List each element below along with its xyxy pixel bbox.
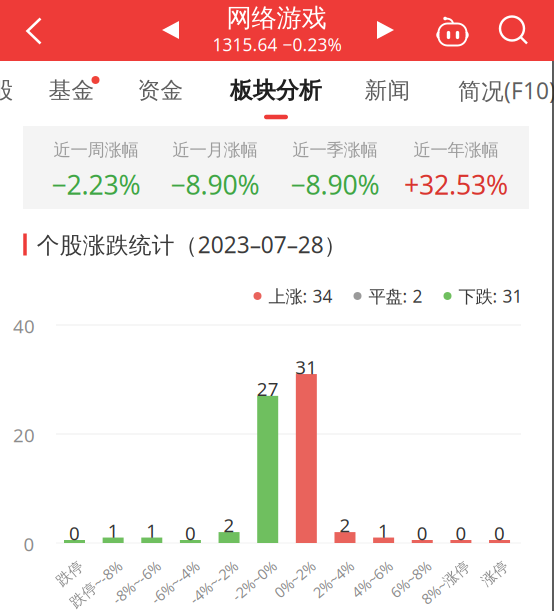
staticText: −8.90% (170, 167, 259, 202)
staticText: 2%~4% (299, 556, 347, 575)
staticText: -8%~-6% (96, 556, 154, 575)
staticText: 上涨: 34 (268, 284, 332, 307)
staticText: 下跌: 31 (458, 284, 522, 307)
button[interactable]: Back (5, 0, 63, 61)
button[interactable]: 资金 (125, 61, 195, 121)
staticText: 20 (13, 423, 35, 447)
staticText: 跌停~-8% (52, 556, 115, 575)
staticText: 网络游戏 (226, 2, 326, 33)
staticText: 基金 (48, 77, 94, 104)
staticText: 40 (13, 314, 35, 338)
staticText: 0 (69, 521, 80, 545)
staticText: 资金 (137, 77, 183, 104)
staticText: 板块分析 (230, 77, 322, 104)
button[interactable]: 板块分析 (221, 61, 331, 121)
staticText: 近一年涨幅 (413, 139, 498, 161)
staticText: +32.53% (404, 167, 508, 202)
staticText: 1 (378, 518, 389, 543)
button[interactable]: 新闻 (352, 61, 422, 121)
staticText: 0%~2% (260, 556, 308, 575)
staticText: 股 (0, 77, 13, 104)
button[interactable]: 近一年涨幅 (397, 126, 515, 209)
button[interactable]: 股 (0, 61, 26, 121)
staticText: 2 (224, 513, 235, 537)
staticText: 涨停 (471, 556, 501, 574)
button[interactable]: 近一月涨幅 (156, 126, 274, 209)
staticText: −2.23% (51, 167, 140, 202)
staticText: 0 (23, 532, 34, 556)
staticText: 跌停 (46, 556, 76, 574)
staticText: -4%~-2% (173, 556, 231, 575)
staticText: -2%~0% (217, 556, 270, 575)
staticText: 31 (295, 355, 317, 379)
staticText: 近一月涨幅 (172, 139, 257, 161)
staticText: 1 (146, 518, 157, 543)
button[interactable]: 简况(F10) (452, 61, 554, 121)
staticText: 近一季涨幅 (292, 139, 377, 161)
button[interactable]: Next sector (361, 4, 409, 56)
button[interactable]: 基金 (36, 61, 106, 121)
staticText: -6%~-4% (134, 556, 192, 575)
button[interactable]: AI assistant (426, 3, 478, 59)
staticText: 1315.64 −0.23% (212, 33, 341, 56)
staticText: 近一周涨幅 (53, 139, 138, 161)
staticText: 0 (455, 521, 466, 545)
button[interactable]: 近一周涨幅 (37, 126, 155, 209)
staticText: 2 (339, 513, 350, 537)
staticText: 0 (494, 521, 505, 545)
staticText: −8.90% (290, 167, 379, 202)
staticText: 个股涨跌统计（2023–07–28） (37, 229, 347, 259)
staticText: 27 (257, 376, 279, 401)
button[interactable]: 近一季涨幅 (276, 126, 394, 209)
staticText: 8%~涨停 (405, 556, 463, 575)
staticText: 平盘: 2 (368, 284, 422, 307)
staticText: 4%~6% (338, 556, 386, 575)
button[interactable]: Previous sector (146, 4, 194, 56)
staticText: 新闻 (364, 77, 410, 104)
staticText: 0 (185, 521, 196, 545)
staticText: 0 (417, 521, 428, 545)
staticText: 简况(F10) (458, 75, 554, 105)
button[interactable]: Search (488, 2, 540, 58)
staticText: 6%~8% (376, 556, 424, 575)
staticText: 1 (108, 518, 119, 543)
